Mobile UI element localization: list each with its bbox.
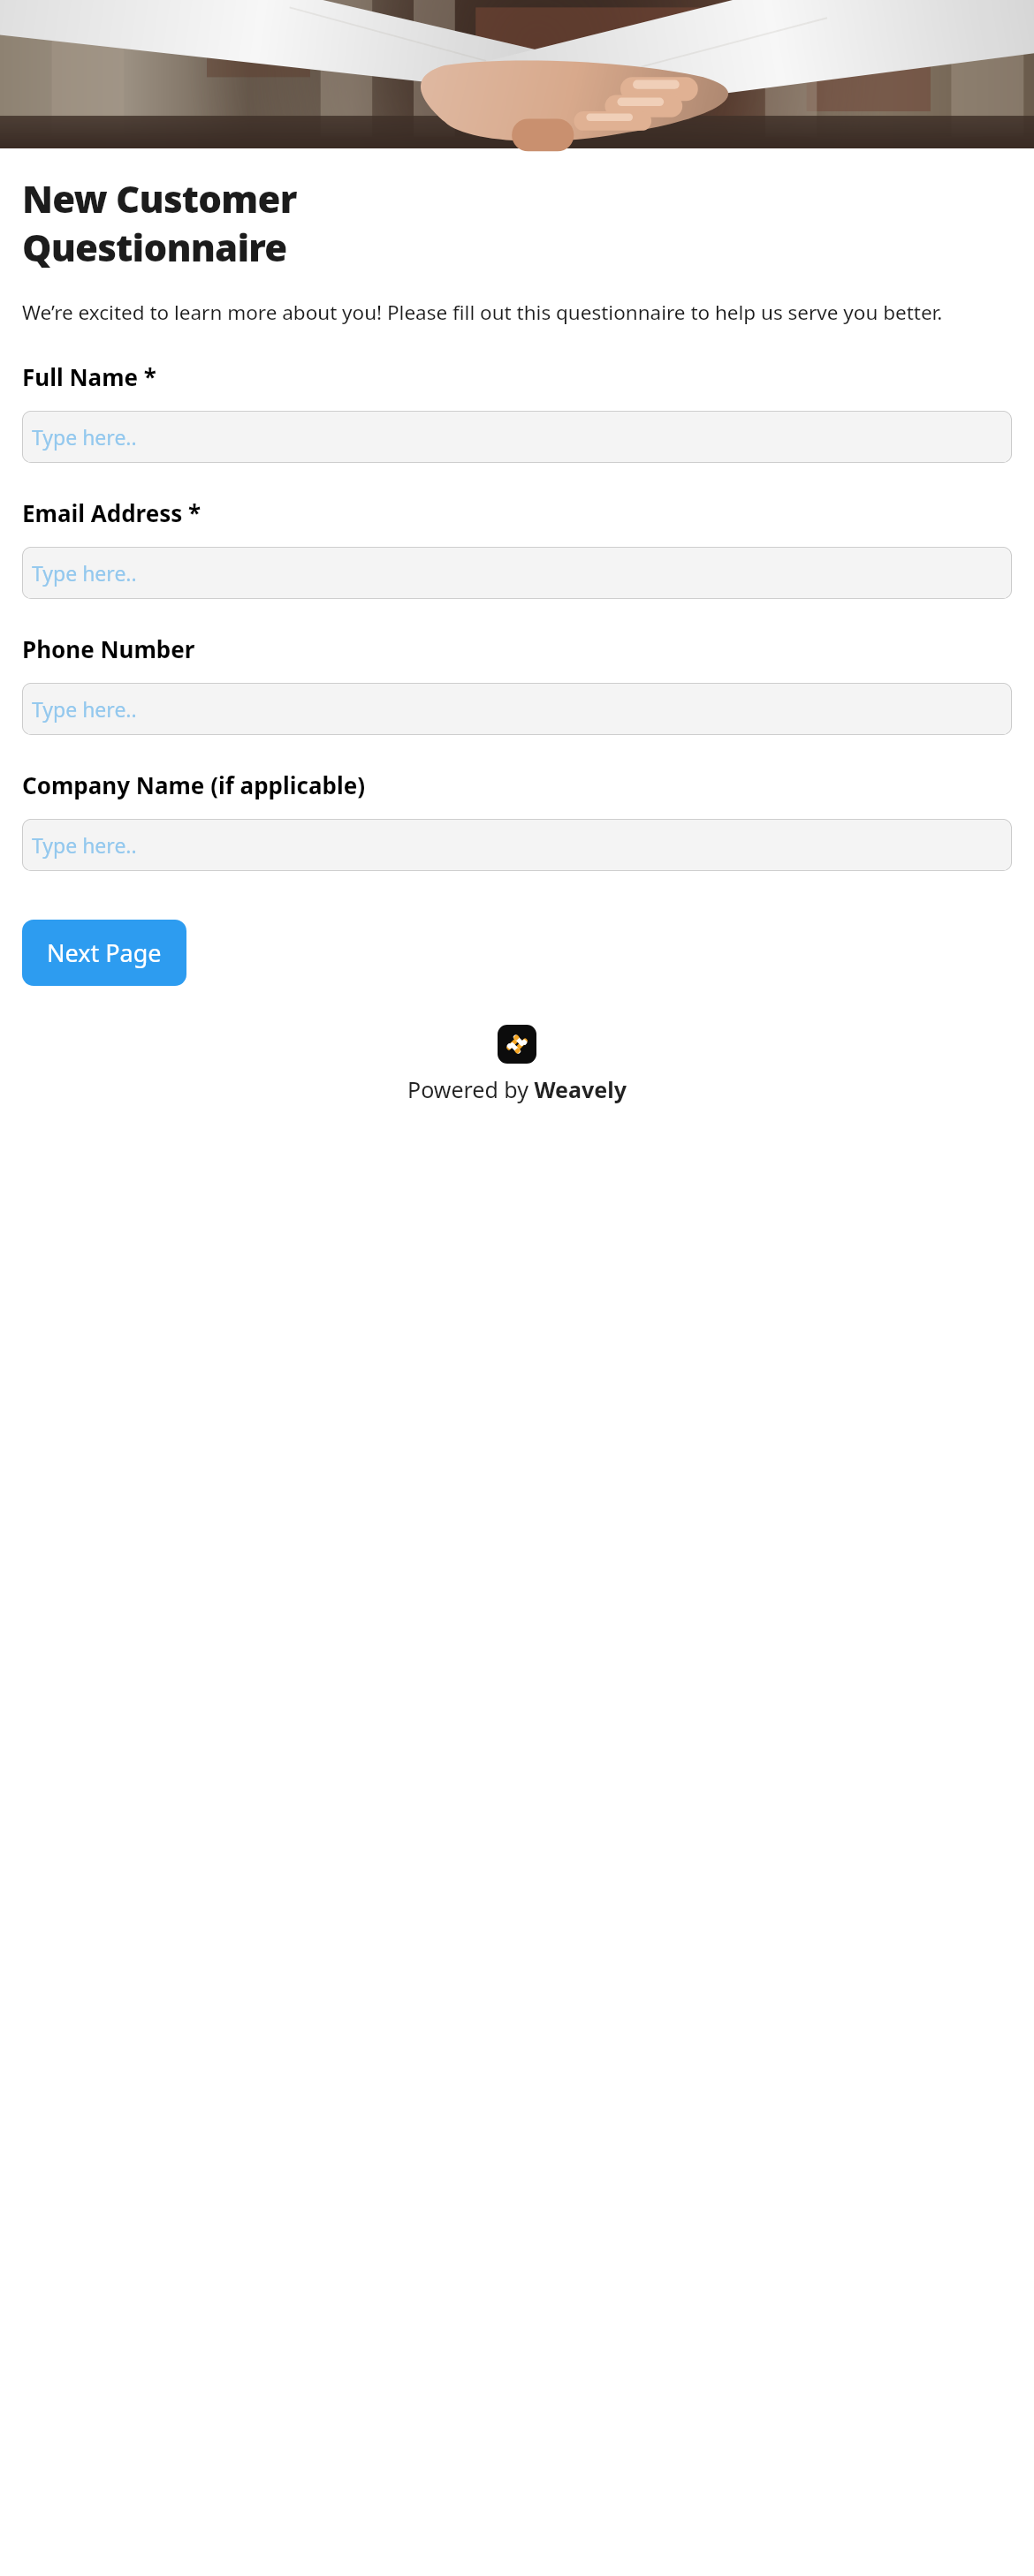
staticText: Type here.. [32, 423, 137, 451]
staticText: Type here.. [32, 559, 137, 587]
staticText: Email Address * [22, 497, 201, 528]
button[interactable]: Type here.. [22, 411, 1012, 463]
button[interactable]: Type here.. [22, 683, 1012, 735]
button[interactable]: Type here.. [22, 547, 1012, 599]
button[interactable]: Next Page [22, 920, 186, 986]
staticText: Full Name * [22, 361, 156, 392]
button[interactable]: Type here.. [22, 819, 1012, 871]
staticText: Type here.. [32, 831, 137, 859]
staticText: Powered by Weavely [407, 1074, 627, 1104]
other: Weavely logo [498, 1025, 536, 1064]
staticText: Phone Number [22, 633, 195, 664]
staticText: Next Page [47, 936, 162, 969]
staticText: We’re excited to learn more about you! P… [22, 299, 943, 326]
staticText: Company Name (if applicable) [22, 769, 366, 800]
staticText: New Customer Questionnaire [22, 173, 297, 272]
staticText: Type here.. [32, 695, 137, 723]
